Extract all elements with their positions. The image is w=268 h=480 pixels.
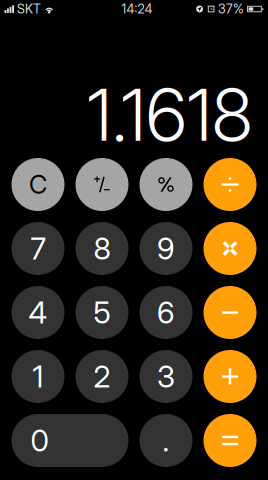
button[interactable]: .: [139, 414, 192, 467]
staticText: 5: [93, 294, 110, 331]
staticText: 37%: [218, 1, 244, 17]
staticText: 14:24: [121, 1, 152, 17]
button[interactable]: 1: [11, 350, 64, 403]
button[interactable]: Multiply: [203, 222, 256, 275]
button[interactable]: 0: [11, 414, 128, 467]
staticText: 7: [30, 230, 45, 267]
button[interactable]: 2: [75, 350, 128, 403]
staticText: 9: [157, 230, 175, 267]
button[interactable]: 9: [139, 222, 192, 275]
staticText: .: [162, 422, 169, 459]
staticText: 1: [32, 358, 43, 395]
staticText: 2: [93, 358, 110, 395]
button[interactable]: Divide: [203, 158, 256, 211]
staticText: 8: [93, 230, 110, 267]
staticText: 4: [28, 294, 47, 331]
button[interactable]: Equals: [203, 414, 256, 467]
button[interactable]: 6: [139, 286, 192, 339]
staticText: SKT: [17, 1, 41, 17]
button[interactable]: Plus minus: [75, 158, 128, 211]
staticText: 1.1618: [87, 71, 252, 158]
button[interactable]: 3: [139, 350, 192, 403]
button[interactable]: 7: [11, 222, 64, 275]
button[interactable]: 8: [75, 222, 128, 275]
button[interactable]: 4: [11, 286, 64, 339]
staticText: C: [29, 169, 47, 200]
button[interactable]: Minus: [203, 286, 256, 339]
staticText: 6: [157, 294, 175, 331]
button[interactable]: Plus: [203, 350, 256, 403]
button[interactable]: Percent: [139, 158, 192, 211]
button[interactable]: 5: [75, 286, 128, 339]
staticText: 3: [157, 358, 175, 395]
staticText: 0: [30, 422, 48, 459]
button[interactable]: C: [11, 158, 64, 211]
